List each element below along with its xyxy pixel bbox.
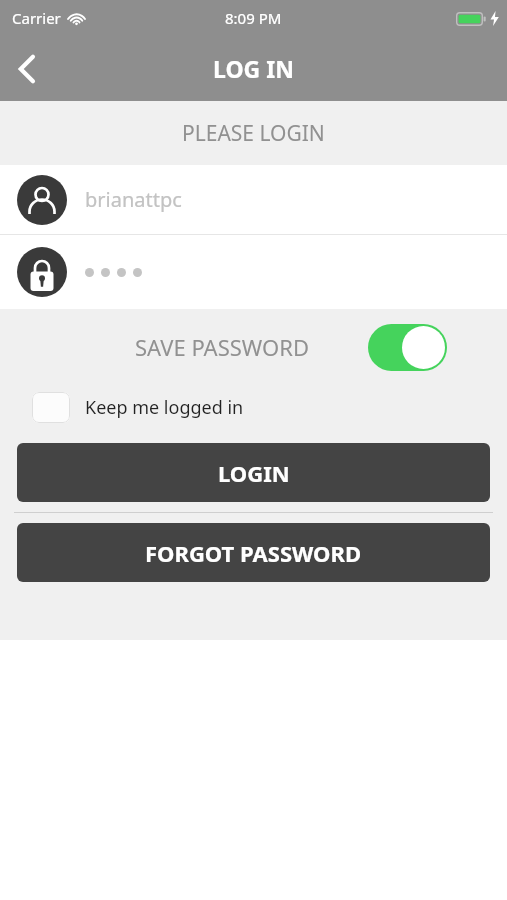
button[interactable]: FORGOT PASSWORD <box>17 523 490 582</box>
staticText: LOG IN <box>213 53 294 84</box>
button[interactable]: Save password toggle <box>368 324 447 371</box>
button[interactable] <box>0 235 507 309</box>
staticText: FORGOT PASSWORD <box>145 538 362 568</box>
button[interactable]: Back <box>0 43 52 95</box>
staticText: brianattpc <box>85 186 182 213</box>
staticText: PLEASE LOGIN <box>182 119 325 148</box>
button[interactable]: LOGIN <box>17 443 490 502</box>
staticText: Keep me logged in <box>85 395 244 420</box>
button[interactable]: Keep me logged in <box>32 385 244 429</box>
staticText: LOGIN <box>218 458 290 488</box>
staticText: Carrier <box>12 8 61 28</box>
staticText: SAVE PASSWORD <box>135 332 309 362</box>
staticText: 8:09 PM <box>225 8 282 28</box>
button[interactable]: brianattpc <box>0 165 507 234</box>
